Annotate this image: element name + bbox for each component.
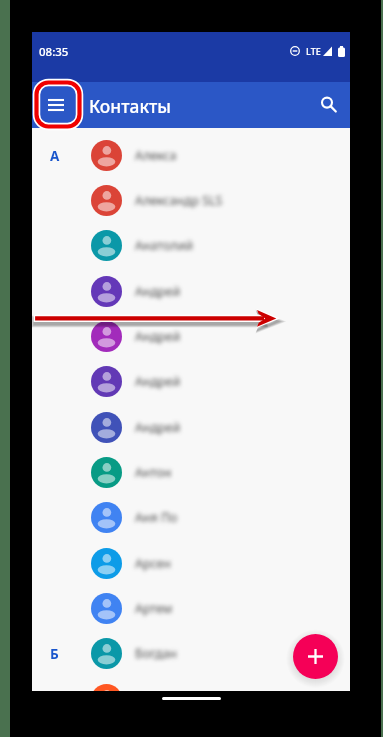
button[interactable]: Search: [306, 82, 350, 128]
button[interactable]: Антон: [32, 450, 350, 495]
staticText: LTE: [306, 45, 321, 57]
button[interactable]: Андрей: [32, 405, 350, 450]
staticText: Андрей: [135, 373, 181, 390]
staticText: Богдан: [135, 645, 177, 662]
button[interactable]: Андрей: [32, 269, 350, 314]
staticText: Антон: [135, 464, 172, 481]
button[interactable]: Андрей: [32, 359, 350, 404]
staticText: Б: [50, 645, 59, 663]
staticText: Артем: [135, 600, 173, 617]
button[interactable]: Аня По: [32, 495, 350, 540]
staticText: Александр SLS: [135, 192, 223, 209]
button[interactable]: Б: [32, 631, 350, 676]
staticText: Алекса: [135, 147, 177, 164]
button[interactable]: Анатолий: [32, 223, 350, 268]
staticText: Аня По: [135, 509, 178, 526]
button[interactable]: Александр SLS: [32, 178, 350, 223]
button[interactable]: Борис: [32, 677, 350, 691]
button[interactable]: Арсен: [32, 541, 350, 586]
staticText: 08:35: [39, 44, 69, 60]
staticText: Контакты: [89, 94, 172, 118]
button[interactable]: Add contact: [293, 634, 338, 679]
staticText: Андрей: [135, 419, 181, 436]
button[interactable]: Open navigation menu: [33, 82, 79, 128]
staticText: Арсен: [135, 555, 171, 572]
staticText: Андрей: [135, 283, 181, 300]
button[interactable]: Артем: [32, 586, 350, 631]
staticText: Андрей: [135, 328, 181, 345]
button[interactable]: Андрей: [32, 314, 350, 359]
staticText: Анатолий: [135, 237, 193, 254]
button[interactable]: А: [32, 133, 350, 178]
staticText: А: [50, 147, 60, 165]
